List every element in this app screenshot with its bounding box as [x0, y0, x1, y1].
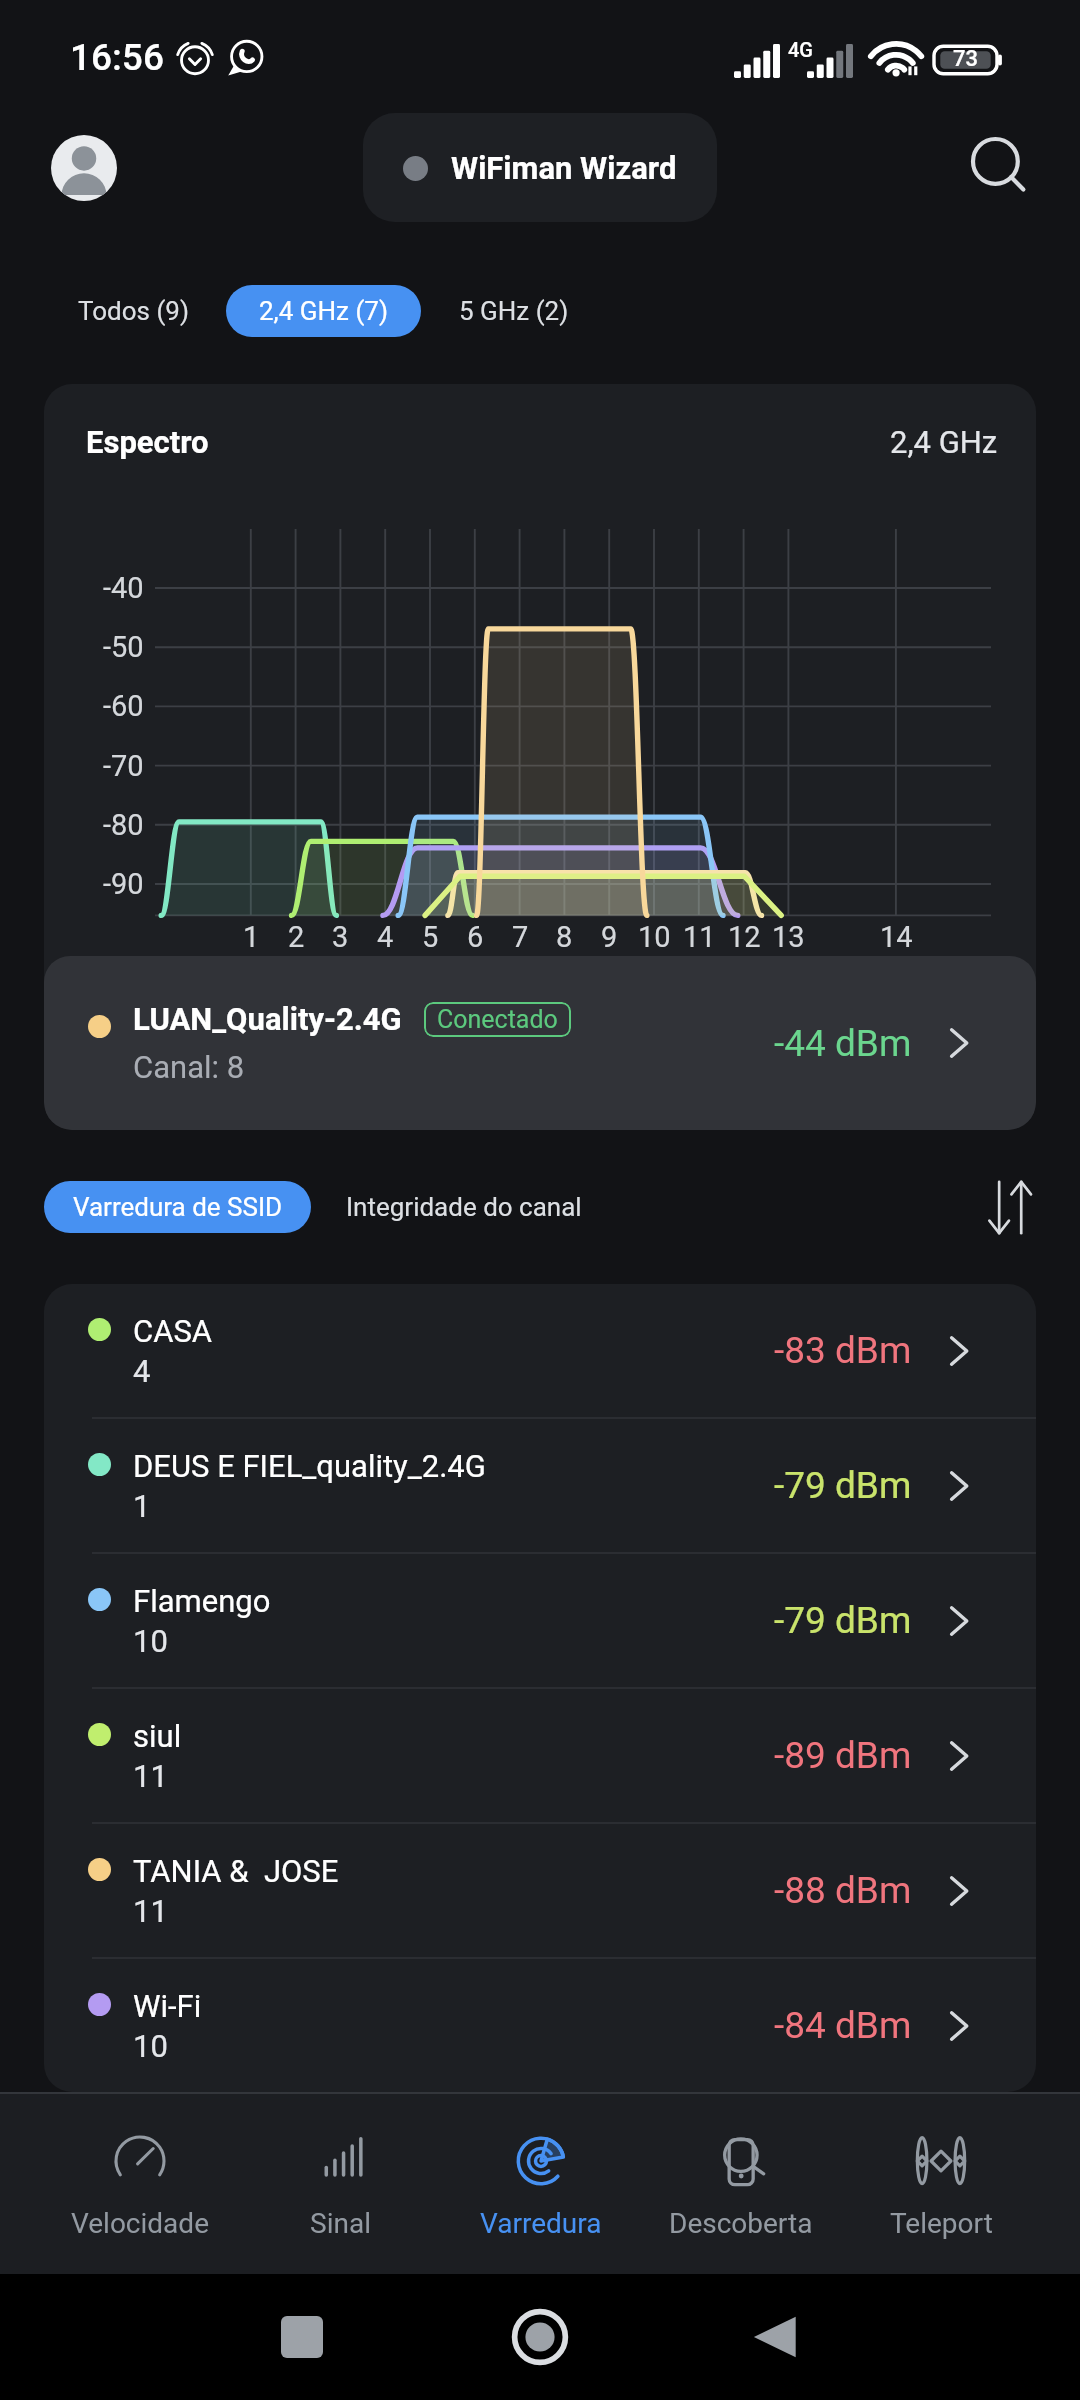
- staticText: 16:56: [70, 36, 164, 79]
- staticText: Conectado: [437, 1005, 558, 1034]
- staticText: 2,4 GHz (7): [259, 296, 388, 326]
- staticText: 1: [243, 920, 260, 954]
- staticText: LUAN_Quality-2.4G: [133, 1001, 402, 1037]
- button[interactable]: Varredura: [441, 2094, 641, 2274]
- staticText: -84 dBm: [774, 2004, 912, 2047]
- staticText: 4: [133, 1353, 151, 1389]
- button[interactable]: Sinal: [240, 2094, 441, 2274]
- staticText: 5: [422, 920, 439, 954]
- staticText: 6: [467, 920, 484, 954]
- staticText: Descoberta: [669, 2207, 813, 2240]
- button[interactable]: Profile: [51, 135, 117, 201]
- staticText: 4G: [788, 38, 813, 61]
- staticText: Espectro: [86, 424, 209, 460]
- button[interactable]: 5 GHz (2): [421, 285, 607, 337]
- button[interactable]: Teleport: [841, 2094, 1041, 2274]
- staticText: 8: [556, 920, 573, 954]
- button[interactable]: WiFiman Wizard: [363, 113, 717, 222]
- staticText: -88 dBm: [774, 1869, 912, 1912]
- staticText: DEUS E FIEL_quality_2.4G: [133, 1448, 486, 1484]
- staticText: -80: [103, 808, 144, 842]
- button[interactable]: siul: [44, 1689, 1036, 1822]
- button[interactable]: Todos (9): [42, 285, 226, 337]
- staticText: -70: [103, 749, 144, 783]
- staticText: -79 dBm: [774, 1599, 912, 1642]
- button[interactable]: 2,4 GHz (7): [226, 285, 421, 337]
- button[interactable]: Varredura de SSID: [44, 1181, 311, 1233]
- staticText: Velocidade: [71, 2207, 209, 2240]
- staticText: 2,4 GHz: [890, 424, 998, 460]
- button[interactable]: Flamengo: [44, 1554, 1036, 1687]
- staticText: 13: [772, 920, 805, 954]
- staticText: Varredura: [480, 2207, 602, 2240]
- button[interactable]: Home: [490, 2287, 590, 2387]
- staticText: 1: [133, 1488, 151, 1524]
- staticText: Canal: 8: [133, 1049, 245, 1085]
- button[interactable]: LUAN_Quality-2.4G: [44, 956, 1036, 1130]
- staticText: WiFiman Wizard: [451, 150, 677, 186]
- button[interactable]: Descoberta: [641, 2094, 841, 2274]
- staticText: Todos (9): [78, 296, 190, 326]
- staticText: TANIA & JOSE: [133, 1853, 339, 1889]
- button[interactable]: CASA: [44, 1284, 1036, 1417]
- staticText: CASA: [133, 1313, 213, 1349]
- button[interactable]: Wi-Fi: [44, 1959, 1036, 2092]
- staticText: -60: [103, 689, 144, 723]
- staticText: -40: [103, 571, 144, 605]
- staticText: Varredura de SSID: [73, 1192, 283, 1222]
- staticText: Wi-Fi: [133, 1988, 202, 2024]
- button[interactable]: Sort: [970, 1176, 1044, 1238]
- staticText: 5 GHz (2): [459, 296, 569, 326]
- staticText: Integridade do canal: [346, 1192, 582, 1222]
- staticText: 9: [601, 920, 618, 954]
- staticText: 10: [638, 920, 671, 954]
- staticText: 11: [683, 920, 716, 954]
- button[interactable]: TANIA & JOSE: [44, 1824, 1036, 1957]
- staticText: 4: [377, 920, 394, 954]
- staticText: 10: [133, 2028, 168, 2064]
- button[interactable]: Search: [958, 124, 1044, 210]
- staticText: 73: [953, 46, 979, 72]
- staticText: -89 dBm: [774, 1734, 912, 1777]
- staticText: 11: [133, 1893, 168, 1929]
- staticText: -50: [103, 630, 144, 664]
- staticText: Teleport: [890, 2207, 993, 2240]
- staticText: 12: [728, 920, 761, 954]
- staticText: -44 dBm: [774, 1022, 912, 1065]
- staticText: -90: [103, 867, 144, 901]
- staticText: Flamengo: [133, 1583, 271, 1619]
- staticText: Sinal: [310, 2207, 371, 2240]
- button[interactable]: Recents: [252, 2287, 352, 2387]
- staticText: 11: [133, 1758, 168, 1794]
- staticText: -79 dBm: [774, 1464, 912, 1507]
- staticText: 7: [512, 920, 529, 954]
- staticText: 3: [332, 920, 349, 954]
- staticText: 10: [133, 1623, 168, 1659]
- button[interactable]: Back: [725, 2287, 825, 2387]
- staticText: 14: [880, 920, 913, 954]
- button[interactable]: Velocidade: [39, 2094, 240, 2274]
- button[interactable]: Integridade do canal: [311, 1181, 611, 1233]
- button[interactable]: DEUS E FIEL_quality_2.4G: [44, 1419, 1036, 1552]
- staticText: siul: [133, 1718, 182, 1754]
- staticText: -83 dBm: [774, 1329, 912, 1372]
- staticText: 2: [288, 920, 305, 954]
